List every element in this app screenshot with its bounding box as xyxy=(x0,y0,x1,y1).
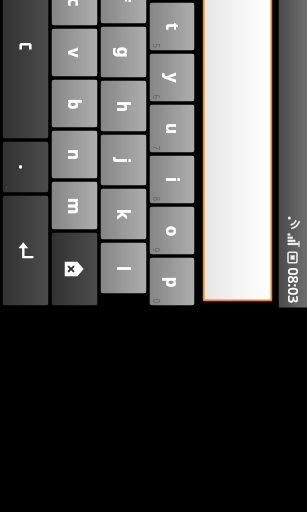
staticText: y xyxy=(160,276,183,286)
button[interactable]: q xyxy=(149,1,194,50)
staticText: z xyxy=(62,98,85,107)
staticText: 4 xyxy=(150,196,161,201)
staticText: x xyxy=(62,149,85,159)
button[interactable]: s xyxy=(100,68,146,119)
button[interactable]: g xyxy=(100,230,146,281)
staticText: a xyxy=(111,34,134,45)
button[interactable]: Status bar xyxy=(278,0,307,511)
staticText: c xyxy=(62,201,85,210)
staticText: 5 xyxy=(150,247,161,252)
staticText: ?123 xyxy=(16,16,34,45)
staticText: , xyxy=(13,131,36,136)
button[interactable]: t xyxy=(149,206,194,254)
button[interactable]: a xyxy=(100,13,146,65)
staticText: w xyxy=(160,70,183,85)
button[interactable]: f xyxy=(100,176,146,227)
button[interactable]: Space xyxy=(2,159,48,342)
staticText: g xyxy=(111,250,134,261)
staticText: b xyxy=(62,302,85,313)
button[interactable]: Switch input method xyxy=(2,63,48,108)
button[interactable]: w xyxy=(149,53,194,101)
button[interactable]: c xyxy=(51,181,97,229)
staticText: 6 xyxy=(150,298,161,303)
staticText: 3 xyxy=(150,145,161,150)
button[interactable]: You will love it xyxy=(204,7,270,503)
staticText: d xyxy=(111,142,134,153)
button[interactable]: z xyxy=(51,78,97,127)
button[interactable]: Shift xyxy=(51,1,97,75)
staticText: t xyxy=(160,226,183,234)
button[interactable]: x xyxy=(51,130,97,178)
button[interactable]: r xyxy=(149,155,194,203)
staticText: q xyxy=(160,20,183,31)
staticText: 1 xyxy=(150,43,161,48)
button[interactable]: , xyxy=(2,111,48,156)
button[interactable]: b xyxy=(51,283,97,331)
button[interactable]: ?123 xyxy=(2,1,48,60)
staticText: s xyxy=(111,89,134,98)
staticText: e xyxy=(160,123,183,134)
staticText: v xyxy=(62,251,85,261)
staticText: 2 xyxy=(150,94,161,99)
button[interactable]: e xyxy=(149,104,194,152)
button[interactable]: d xyxy=(100,122,146,173)
staticText: r xyxy=(160,175,183,183)
button[interactable]: y xyxy=(149,257,194,305)
button[interactable]: h xyxy=(100,284,146,335)
staticText: f xyxy=(111,198,134,205)
button[interactable]: v xyxy=(51,232,97,280)
